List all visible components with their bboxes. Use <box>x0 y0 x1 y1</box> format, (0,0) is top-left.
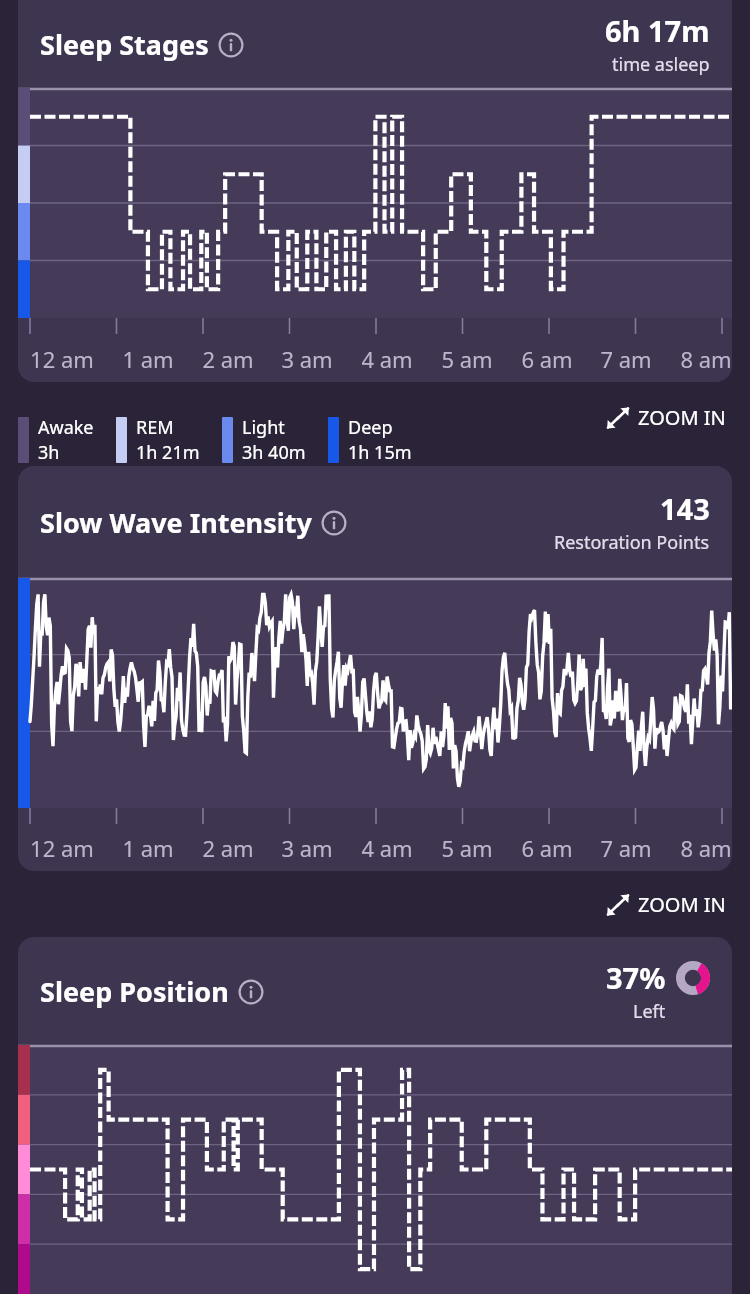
staticText: ZOOM IN <box>638 891 726 918</box>
button[interactable]: Info <box>218 32 244 58</box>
button[interactable]: Sleep Stages <box>18 0 732 382</box>
button[interactable]: Info <box>321 510 347 536</box>
staticText: Slow Wave Intensity <box>40 504 312 541</box>
staticText: Awake <box>38 415 94 440</box>
staticText: 7 am <box>600 344 652 374</box>
staticText: 12 am <box>30 344 94 374</box>
staticText: 37% <box>606 958 666 997</box>
staticText: 3h 40m <box>242 440 306 465</box>
staticText: 3h <box>38 440 60 465</box>
staticText: Light <box>242 415 285 440</box>
staticText: 5 am <box>441 833 493 863</box>
staticText: Sleep Stages <box>40 26 209 63</box>
button[interactable]: ZOOM IN <box>600 885 732 924</box>
staticText: 5 am <box>441 344 493 374</box>
staticText: 143 <box>660 489 710 528</box>
staticText: 3 am <box>281 833 333 863</box>
staticText: 4 am <box>361 833 413 863</box>
staticText: 6 am <box>521 344 573 374</box>
staticText: 6 am <box>521 833 573 863</box>
button[interactable]: ZOOM IN <box>600 398 732 437</box>
staticText: 12 am <box>30 833 94 863</box>
staticText: time asleep <box>612 52 710 77</box>
staticText: 3 am <box>281 344 333 374</box>
staticText: Deep <box>348 415 393 440</box>
staticText: 1 am <box>122 344 174 374</box>
staticText: Restoration Points <box>554 530 710 555</box>
button[interactable]: Sleep Position <box>18 937 732 1294</box>
staticText: 1h 15m <box>348 440 412 465</box>
staticText: 2 am <box>202 344 254 374</box>
staticText: Left <box>633 999 666 1024</box>
button[interactable]: Info <box>238 979 264 1005</box>
button[interactable]: Slow Wave Intensity <box>18 466 732 871</box>
staticText: REM <box>136 415 174 440</box>
staticText: 1 am <box>122 833 174 863</box>
staticText: 7 am <box>600 833 652 863</box>
staticText: Sleep Position <box>40 973 229 1010</box>
staticText: 2 am <box>202 833 254 863</box>
staticText: 4 am <box>361 344 413 374</box>
staticText: 8 am <box>680 344 732 374</box>
staticText: 6h 17m <box>605 11 710 50</box>
staticText: 8 am <box>680 833 732 863</box>
staticText: ZOOM IN <box>638 404 726 431</box>
staticText: 1h 21m <box>136 440 200 465</box>
